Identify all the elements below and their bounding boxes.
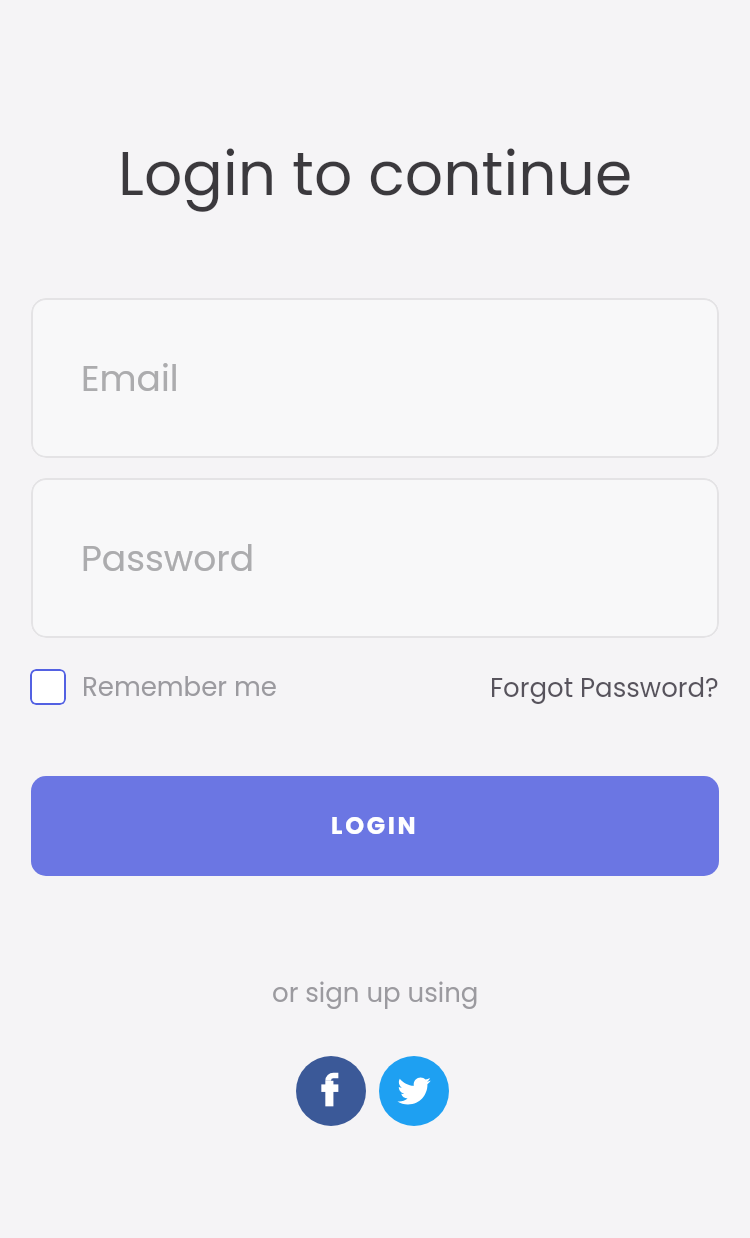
staticText: Password (81, 533, 255, 583)
button[interactable]: Forgot Password? (490, 670, 719, 706)
staticText: Login to continue (118, 132, 633, 216)
staticText: Email (81, 353, 179, 403)
button[interactable]: Remember me (30, 669, 277, 705)
staticText: Forgot Password? (490, 670, 719, 706)
staticText: or sign up using (272, 975, 479, 1011)
button[interactable] (296, 1056, 366, 1126)
staticText: LOGIN (331, 809, 419, 843)
button[interactable]: Password (31, 478, 719, 638)
button[interactable] (379, 1056, 449, 1126)
button[interactable]: LOGIN (31, 776, 719, 876)
button[interactable]: Email (31, 298, 719, 458)
staticText: Remember me (82, 669, 277, 705)
